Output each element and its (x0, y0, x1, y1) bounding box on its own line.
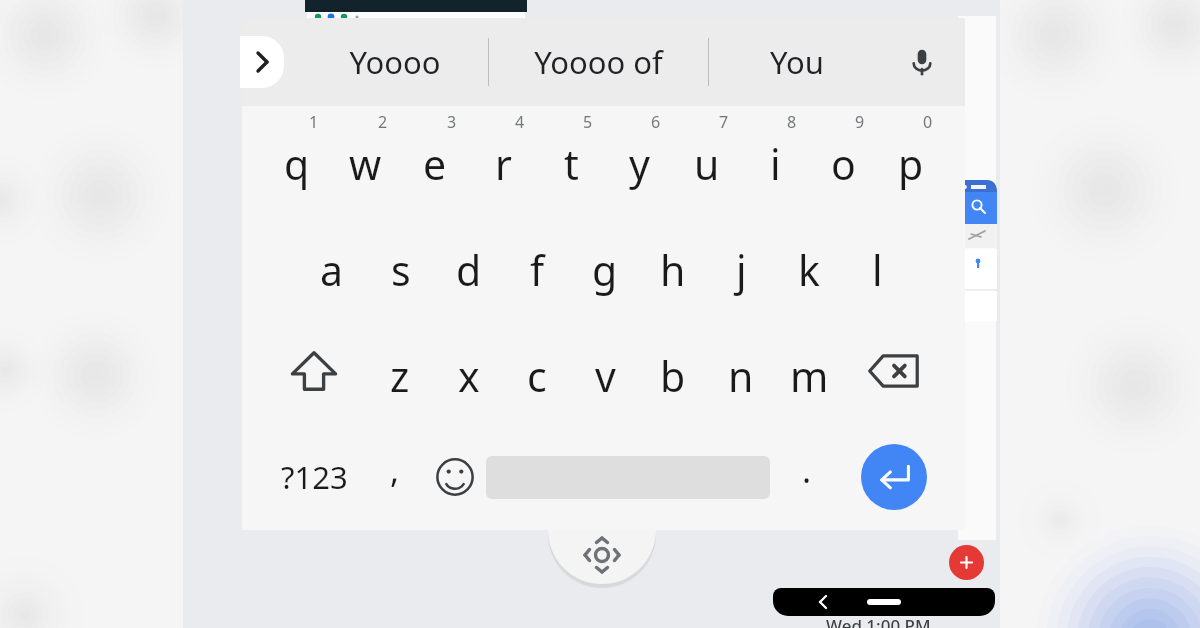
staticText: 0 (923, 111, 933, 133)
button[interactable]: Expand toolbar (240, 36, 284, 88)
button[interactable]: b (639, 318, 707, 424)
button[interactable]: Emoji (423, 424, 486, 530)
staticText: 8 (787, 111, 797, 133)
staticText: l (872, 242, 883, 298)
staticText: y (629, 136, 650, 192)
staticText: c (527, 348, 547, 404)
button[interactable]: You (709, 18, 885, 106)
button[interactable]: 8 (741, 106, 809, 212)
button[interactable]: m (775, 318, 843, 424)
staticText: k (798, 242, 820, 298)
staticText: p (898, 136, 924, 192)
button[interactable]: Voice input (885, 18, 959, 106)
button[interactable]: , (367, 424, 423, 530)
staticText: g (592, 242, 618, 298)
button[interactable]: 9 (809, 106, 877, 212)
staticText: 1 (309, 111, 319, 133)
button[interactable]: l (843, 212, 911, 318)
button[interactable]: Shift (262, 318, 365, 424)
button[interactable]: x (434, 318, 503, 424)
button[interactable]: 5 (537, 106, 605, 212)
button[interactable]: 1 (262, 106, 331, 212)
staticText: 6 (651, 111, 661, 133)
button[interactable]: 6 (605, 106, 673, 212)
staticText: w (349, 136, 382, 192)
staticText: e (423, 136, 447, 192)
staticText: q (284, 136, 310, 192)
button[interactable]: . (770, 424, 843, 530)
staticText: 2 (378, 111, 388, 133)
button[interactable]: 7 (673, 106, 741, 212)
staticText: ?123 (281, 456, 348, 498)
staticText: , (390, 447, 400, 493)
button[interactable]: ?123 (262, 424, 367, 530)
button[interactable]: c (503, 318, 571, 424)
button[interactable]: g (571, 212, 639, 318)
staticText: t (564, 136, 579, 192)
button[interactable]: Enter (861, 444, 927, 510)
button[interactable]: Backspace (843, 318, 945, 424)
staticText: Yoooo (349, 41, 441, 83)
button[interactable]: v (571, 318, 639, 424)
button[interactable]: Move keyboard (548, 530, 656, 602)
staticText: o (831, 136, 856, 192)
staticText: 9 (855, 111, 865, 133)
button[interactable]: k (775, 212, 843, 318)
staticText: m (790, 348, 829, 404)
button[interactable]: 4 (469, 106, 537, 212)
staticText: j (736, 242, 747, 298)
button[interactable]: 0 (877, 106, 945, 212)
button[interactable]: Yoooo of (489, 18, 708, 106)
staticText: Wed 1:00 PM (826, 614, 931, 628)
button[interactable]: 2 (331, 106, 400, 212)
button[interactable]: Yoooo (302, 18, 488, 106)
staticText: 7 (719, 111, 729, 133)
button[interactable]: s (366, 212, 435, 318)
staticText: z (390, 348, 410, 404)
button[interactable]: j (707, 212, 775, 318)
staticText: d (456, 242, 482, 298)
staticText: 3 (447, 111, 457, 133)
staticText: a (320, 242, 344, 298)
button[interactable]: d (435, 212, 503, 318)
staticText: h (660, 242, 686, 298)
button[interactable]: z (365, 318, 434, 424)
staticText: x (458, 348, 480, 404)
staticText: You (770, 41, 824, 83)
staticText: i (770, 136, 781, 192)
staticText: s (391, 242, 411, 298)
staticText: n (728, 348, 754, 404)
staticText: r (495, 136, 512, 192)
button[interactable]: n (707, 318, 775, 424)
staticText: v (595, 348, 616, 404)
staticText: f (530, 242, 545, 298)
button[interactable]: h (639, 212, 707, 318)
button[interactable]: f (503, 212, 571, 318)
staticText: b (660, 348, 686, 404)
staticText: 4 (515, 111, 525, 133)
button[interactable]: Add (949, 545, 984, 580)
staticText: . (802, 447, 812, 493)
staticText: 5 (583, 111, 593, 133)
button[interactable]: a (297, 212, 366, 318)
staticText: Yoooo of (534, 41, 663, 83)
button[interactable]: 3 (400, 106, 469, 212)
staticText: u (694, 136, 720, 192)
